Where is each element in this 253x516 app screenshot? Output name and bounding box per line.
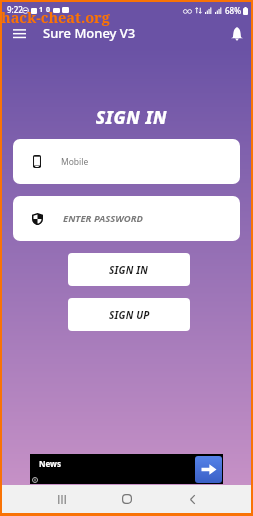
button[interactable]: SIGN UP (68, 298, 190, 331)
button[interactable]: Home (107, 485, 147, 513)
button[interactable]: ENTER PASSWORD (13, 196, 240, 241)
button[interactable]: Recents (42, 485, 82, 513)
button[interactable]: Mobile (13, 139, 240, 184)
button[interactable]: Menu (6, 20, 32, 46)
button[interactable]: Open ad (195, 456, 222, 483)
staticText: News (39, 458, 61, 469)
staticText: 0 (46, 5, 51, 15)
staticText: ENTER PASSWORD (63, 212, 143, 225)
staticText: 9:22 (7, 4, 23, 15)
staticText: SIGN IN (7, 105, 253, 129)
staticText: hack-cheat.org (1, 7, 110, 27)
staticText: 68% (225, 5, 241, 16)
button[interactable]: Notifications (224, 21, 250, 47)
staticText: 1 (39, 5, 44, 15)
button[interactable]: Back (172, 485, 212, 513)
staticText: SIGN UP (109, 308, 150, 322)
staticText: Mobile (61, 156, 89, 168)
staticText: SIGN IN (109, 263, 149, 277)
staticText: Sure Money V3 (43, 24, 136, 42)
button[interactable]: SIGN IN (68, 253, 190, 286)
button[interactable]: News (30, 454, 223, 484)
